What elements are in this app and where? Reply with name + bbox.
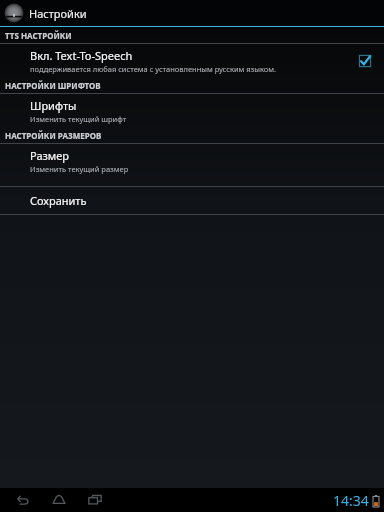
staticText: Настройки [29, 6, 87, 21]
button[interactable]: Recent apps [82, 488, 108, 512]
button[interactable]: Вкл. Text-To-Speech [0, 44, 384, 77]
button[interactable]: Шрифты [0, 94, 384, 127]
staticText: Шрифты [30, 98, 77, 113]
button[interactable]: Сохранить [0, 187, 384, 214]
staticText: НАСТРОЙКИ РАЗМЕРОВ [5, 130, 102, 141]
button[interactable]: Back [10, 488, 36, 512]
staticText: 14:34 [333, 491, 369, 510]
staticText: TTS НАСТРОЙКИ [5, 30, 72, 41]
other: Enable Text-To-Speech [358, 54, 372, 68]
staticText: Вкл. Text-To-Speech [30, 48, 133, 63]
button[interactable]: Размер [0, 144, 384, 177]
staticText: НАСТРОЙКИ ШРИФТОВ [5, 80, 101, 91]
staticText: Сохранить [30, 193, 87, 208]
staticText: поддерживается любая система с установле… [30, 64, 277, 74]
staticText: Изменить текущий размер [30, 164, 129, 174]
button[interactable]: Home [46, 488, 72, 512]
staticText: Размер [30, 148, 70, 163]
staticText: Изменить текущий шрифт [30, 114, 127, 124]
other: App icon [3, 3, 25, 25]
